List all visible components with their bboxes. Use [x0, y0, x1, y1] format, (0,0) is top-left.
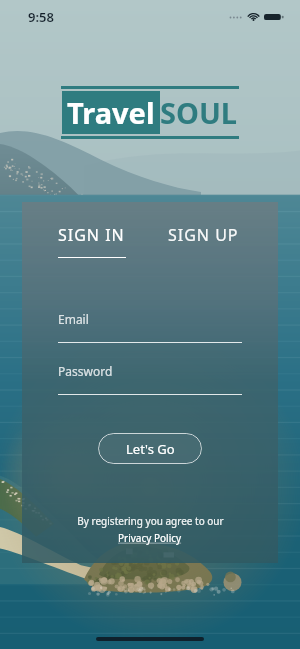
staticText: Privacy Policy: [118, 531, 182, 545]
staticText: By registering you agree to our: [77, 514, 224, 528]
staticText: Travel: [67, 93, 155, 132]
button[interactable]: Password: [58, 363, 242, 395]
button[interactable]: SIGN IN: [58, 224, 126, 258]
staticText: Password: [58, 363, 113, 379]
staticText: Let's Go: [126, 440, 175, 458]
staticText: Email: [58, 311, 89, 327]
button[interactable]: Privacy Policy: [118, 531, 182, 545]
staticText: SOUL: [160, 93, 238, 132]
staticText: SIGN UP: [168, 224, 239, 246]
button[interactable]: Email: [58, 311, 242, 343]
button[interactable]: Let's Go: [98, 433, 202, 464]
button[interactable]: SIGN UP: [168, 224, 239, 246]
staticText: 9:58: [28, 8, 54, 26]
staticText: SIGN IN: [58, 224, 125, 246]
